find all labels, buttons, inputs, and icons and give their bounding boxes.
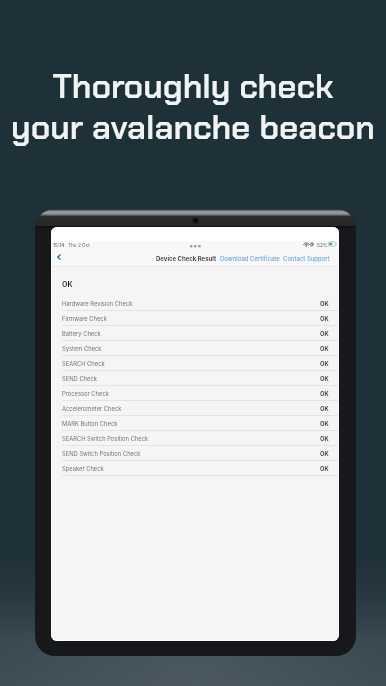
staticText: Thoroughly check xyxy=(0,65,386,109)
button[interactable]: System Check xyxy=(51,341,339,356)
button[interactable]: MARK Button Check xyxy=(51,416,339,431)
staticText: Processor Check xyxy=(62,390,109,397)
button[interactable]: Firmware Check xyxy=(51,311,339,326)
staticText: OK xyxy=(320,315,329,322)
staticText: MARK Button Check xyxy=(62,420,118,427)
button[interactable]: SEND Switch Position Check xyxy=(51,446,339,461)
staticText: OK xyxy=(320,330,329,337)
staticText: Device Check Result xyxy=(156,255,217,262)
staticText: SEND Switch Position Check xyxy=(62,450,141,457)
button[interactable]: Hardware Revision Check xyxy=(51,296,339,311)
staticText: OK xyxy=(320,390,329,397)
staticText: Speaker Check xyxy=(62,465,104,472)
staticText: Accelerometer Check xyxy=(62,405,122,412)
staticText: OK xyxy=(320,435,329,442)
staticText: OK xyxy=(320,360,329,367)
button[interactable]: Back xyxy=(52,250,65,263)
button[interactable]: Accelerometer Check xyxy=(51,401,339,416)
staticText: OK xyxy=(320,420,329,427)
button[interactable]: Processor Check xyxy=(51,386,339,401)
button[interactable]: Contact Support xyxy=(280,252,333,265)
staticText: OK xyxy=(320,465,329,472)
button[interactable]: Battery Check xyxy=(51,326,339,341)
staticText: Contact Support xyxy=(283,255,330,262)
staticText: SEARCH Check xyxy=(62,360,105,367)
button[interactable]: SEARCH Check xyxy=(51,356,339,371)
staticText: OK xyxy=(320,300,329,307)
staticText: OK xyxy=(62,280,73,288)
button[interactable]: Speaker Check xyxy=(51,461,339,476)
staticText: SEND Check xyxy=(62,375,97,382)
staticText: SEARCH Switch Position Check xyxy=(62,435,149,442)
staticText: OK xyxy=(320,345,329,352)
staticText: Battery Check xyxy=(62,330,101,337)
button[interactable]: SEND Check xyxy=(51,371,339,386)
button[interactable]: SEARCH Switch Position Check xyxy=(51,431,339,446)
staticText: Download Certificate xyxy=(220,255,280,262)
staticText: OK xyxy=(320,375,329,382)
staticText: System Check xyxy=(62,345,102,352)
staticText: Firmware Check xyxy=(62,315,107,322)
staticText: your avalanche beacon xyxy=(0,106,386,150)
staticText: Hardware Revision Check xyxy=(62,300,133,307)
staticText: OK xyxy=(320,450,329,457)
staticText: Thu 2 Oct xyxy=(68,242,90,248)
button[interactable]: Download Certificate xyxy=(217,252,283,265)
staticText: 15:14 xyxy=(53,242,65,248)
staticText: OK xyxy=(320,405,329,412)
staticText: 52% xyxy=(317,242,328,248)
